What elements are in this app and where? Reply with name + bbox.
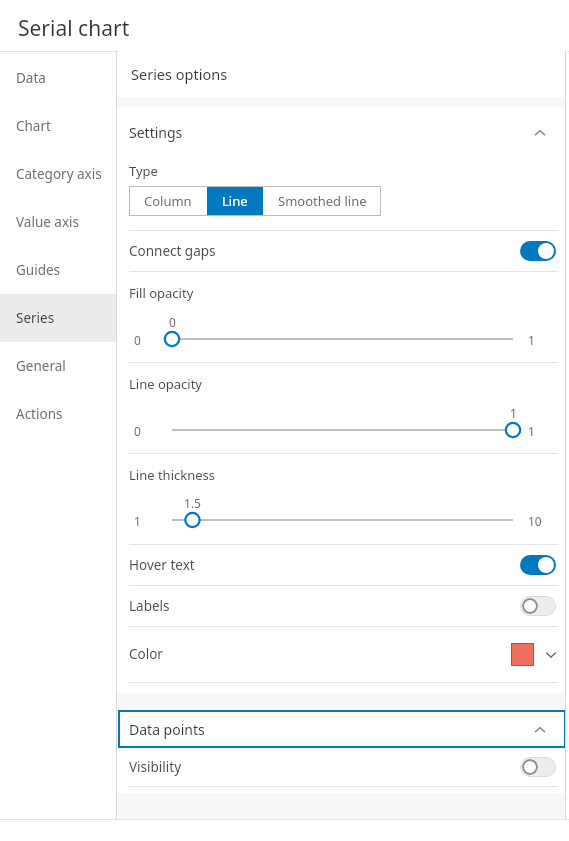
- staticText: Connect gaps: [129, 242, 216, 260]
- button[interactable]: Column: [129, 186, 207, 216]
- staticText: General: [16, 357, 66, 375]
- button[interactable]: Chart: [0, 102, 116, 150]
- button[interactable]: Data: [0, 54, 116, 102]
- staticText: Data: [16, 69, 46, 87]
- other: Toggle on: [520, 241, 556, 261]
- button[interactable]: General: [0, 342, 116, 390]
- staticText: Data points: [129, 720, 205, 739]
- button[interactable]: Connect gaps: [118, 230, 566, 271]
- staticText: Guides: [16, 261, 61, 279]
- staticText: 0: [134, 423, 141, 439]
- button[interactable]: Series: [0, 294, 116, 342]
- staticText: Actions: [16, 405, 63, 423]
- button[interactable]: Smoothed line: [263, 186, 381, 216]
- staticText: Line: [222, 192, 248, 210]
- staticText: Series: [16, 309, 55, 327]
- staticText: Fill opacity: [129, 284, 194, 302]
- staticText: 10: [528, 513, 542, 529]
- staticText: Hover text: [129, 556, 195, 574]
- button[interactable]: Hover text: [118, 544, 566, 585]
- staticText: Color: [129, 645, 163, 663]
- other: Toggle on: [520, 555, 556, 575]
- staticText: 0: [169, 314, 176, 330]
- button[interactable]: Slider: [160, 417, 530, 443]
- staticText: Line opacity: [129, 375, 202, 393]
- staticText: 1: [528, 423, 535, 439]
- other: Collapse: [533, 126, 547, 140]
- staticText: 1: [510, 405, 517, 421]
- staticText: Category axis: [16, 165, 102, 183]
- staticText: Series options: [131, 64, 228, 84]
- button[interactable]: Guides: [0, 246, 116, 294]
- button[interactable]: Actions: [0, 390, 116, 438]
- staticText: 1: [134, 513, 141, 529]
- button[interactable]: Slider: [160, 507, 530, 533]
- staticText: 1.5: [184, 495, 201, 511]
- staticText: Type: [129, 162, 158, 180]
- staticText: Serial chart: [18, 14, 130, 43]
- staticText: Value axis: [16, 213, 80, 231]
- button[interactable]: Category axis: [0, 150, 116, 198]
- button[interactable]: Value axis: [0, 198, 116, 246]
- other: Toggle off: [520, 757, 556, 777]
- staticText: Chart: [16, 117, 51, 135]
- other: Series color: [511, 643, 534, 666]
- button[interactable]: Labels: [118, 585, 566, 626]
- staticText: Settings: [129, 123, 183, 142]
- staticText: Labels: [129, 597, 170, 615]
- staticText: Visibility: [129, 758, 182, 776]
- other: Expand color options: [544, 648, 558, 662]
- other: Collapse: [533, 723, 547, 737]
- button[interactable]: Settings: [118, 107, 566, 157]
- button[interactable]: Line: [207, 186, 263, 216]
- staticText: 1: [528, 332, 535, 348]
- button[interactable]: Color: [118, 626, 566, 682]
- staticText: Line thickness: [129, 466, 215, 484]
- other: Toggle off: [520, 596, 556, 616]
- staticText: Column: [144, 192, 192, 210]
- button[interactable]: Slider: [160, 326, 530, 352]
- button[interactable]: Visibility: [118, 746, 566, 787]
- staticText: Smoothed line: [278, 192, 367, 210]
- staticText: 0: [134, 332, 141, 348]
- button[interactable]: Data points: [118, 710, 566, 748]
